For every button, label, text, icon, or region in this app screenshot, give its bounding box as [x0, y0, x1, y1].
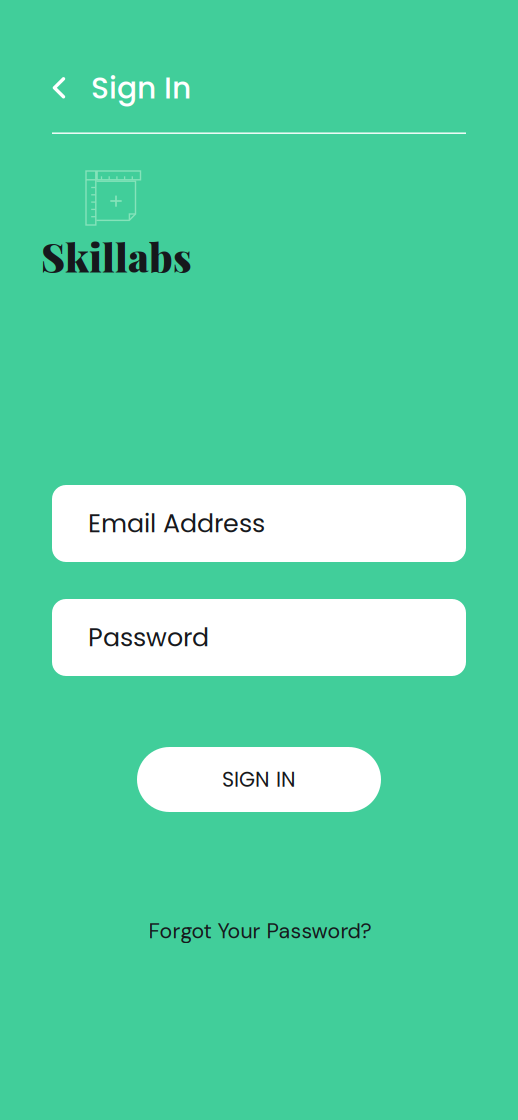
button[interactable]: Forgot Your Password?: [130, 909, 390, 953]
staticText: SIGN IN: [222, 765, 296, 794]
staticText: Password: [88, 620, 209, 655]
button[interactable]: SIGN IN: [137, 747, 381, 812]
staticText: Email Address: [88, 506, 265, 541]
button[interactable]: Email Address: [52, 485, 466, 562]
button[interactable]: Password: [52, 599, 466, 676]
staticText: Skillabs: [41, 230, 192, 282]
staticText: Forgot Your Password?: [148, 917, 371, 945]
button[interactable]: Back: [46, 68, 72, 108]
staticText: Sign In: [91, 67, 191, 109]
